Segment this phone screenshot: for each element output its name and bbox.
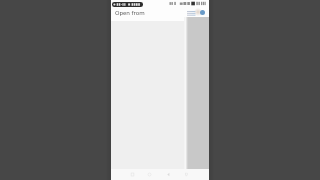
button[interactable]: Menu <box>186 9 196 17</box>
staticText: Open from <box>115 9 145 17</box>
button[interactable]: Recents <box>129 169 136 180</box>
button[interactable]: Hide keyboard <box>183 169 190 180</box>
button[interactable]: Back <box>165 169 172 180</box>
button[interactable]: Account <box>200 10 205 15</box>
